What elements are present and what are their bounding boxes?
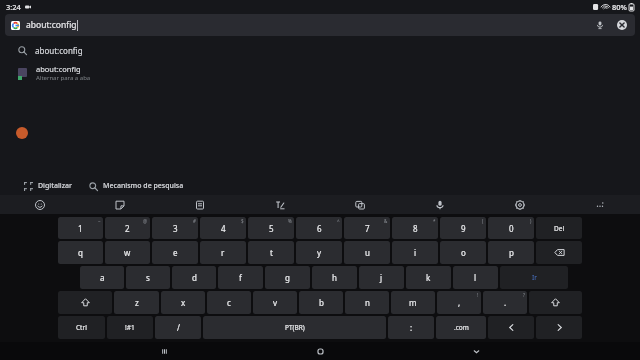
button[interactable]: More options: [560, 195, 640, 214]
button[interactable]: Translate: [320, 195, 400, 214]
staticText: f: [239, 272, 242, 283]
button[interactable]: :: [388, 316, 434, 339]
button[interactable]: j: [359, 266, 404, 289]
button[interactable]: f: [218, 266, 263, 289]
staticText: z: [135, 297, 139, 308]
button[interactable]: .com: [436, 316, 486, 339]
staticText: q: [78, 247, 83, 258]
button[interactable]: t: [248, 241, 294, 264]
button[interactable]: z: [114, 291, 159, 314]
button[interactable]: Voice input: [400, 195, 480, 214]
staticText: u: [365, 247, 370, 258]
button[interactable]: 4: [200, 217, 246, 239]
button[interactable]: Cursor left: [488, 316, 534, 339]
staticText: m: [409, 297, 417, 308]
button[interactable]: /: [155, 316, 201, 339]
button[interactable]: 1: [58, 217, 103, 239]
staticText: ,: [458, 297, 461, 308]
staticText: 3:24: [6, 2, 21, 12]
button[interactable]: Clipboard: [160, 195, 240, 214]
button[interactable]: w: [105, 241, 150, 264]
button[interactable]: 9: [440, 217, 486, 239]
button[interactable]: !#1: [107, 316, 153, 339]
button[interactable]: q: [58, 241, 103, 264]
button[interactable]: b: [299, 291, 343, 314]
button[interactable]: r: [200, 241, 246, 264]
staticText: t: [270, 247, 273, 258]
button[interactable]: 0: [488, 217, 534, 239]
staticText: 6: [317, 223, 322, 234]
button[interactable]: 2: [105, 217, 150, 239]
button[interactable]: a: [80, 266, 124, 289]
button[interactable]: 7: [344, 217, 390, 239]
button[interactable]: Settings: [480, 195, 560, 214]
button[interactable]: Recent apps: [125, 342, 203, 360]
button[interactable]: Digitalizar: [22, 179, 75, 193]
button[interactable]: g: [265, 266, 310, 289]
button[interactable]: p: [488, 241, 534, 264]
button[interactable]: m: [391, 291, 435, 314]
staticText: 8: [413, 223, 418, 234]
button[interactable]: y: [296, 241, 342, 264]
staticText: d: [192, 272, 197, 283]
button[interactable]: Emoji: [0, 195, 80, 214]
staticText: e: [173, 247, 178, 258]
staticText: @: [143, 218, 148, 224]
button[interactable]: o: [440, 241, 486, 264]
button[interactable]: Shift: [58, 291, 112, 314]
button[interactable]: .: [483, 291, 527, 314]
staticText: /: [177, 322, 180, 333]
button[interactable]: i: [392, 241, 438, 264]
staticText: x: [181, 297, 186, 308]
staticText: #: [193, 218, 196, 224]
button[interactable]: 5: [248, 217, 294, 239]
staticText: g: [285, 272, 290, 283]
button[interactable]: s: [126, 266, 170, 289]
staticText: $: [241, 218, 244, 224]
button[interactable]: 8: [392, 217, 438, 239]
button[interactable]: l: [453, 266, 498, 289]
staticText: p: [509, 247, 514, 258]
button[interactable]: v: [253, 291, 297, 314]
button[interactable]: about:config: [0, 61, 640, 85]
button[interactable]: Handwriting: [240, 195, 320, 214]
button[interactable]: h: [312, 266, 357, 289]
staticText: (: [482, 218, 484, 224]
button[interactable]: e: [152, 241, 198, 264]
button[interactable]: Clear: [615, 18, 629, 32]
button[interactable]: Ctrl: [58, 316, 105, 339]
button[interactable]: PT(BR): [203, 316, 386, 339]
button[interactable]: Voice search: [593, 18, 607, 32]
staticText: 4: [221, 223, 226, 234]
staticText: .: [504, 297, 507, 308]
staticText: 1: [78, 223, 83, 234]
staticText: .com: [454, 323, 469, 332]
staticText: 80%: [612, 2, 627, 12]
button[interactable]: ,: [437, 291, 481, 314]
button[interactable]: Shift: [529, 291, 582, 314]
button[interactable]: Del: [536, 217, 582, 239]
staticText: Digitalizar: [38, 181, 73, 191]
button[interactable]: Cursor right: [536, 316, 582, 339]
button[interactable]: c: [207, 291, 251, 314]
button[interactable]: d: [172, 266, 216, 289]
button[interactable]: Home: [281, 342, 359, 360]
button[interactable]: 6: [296, 217, 342, 239]
button[interactable]: about:config: [0, 39, 640, 61]
button[interactable]: Ir: [500, 266, 568, 289]
staticText: a: [100, 272, 105, 283]
button[interactable]: x: [161, 291, 205, 314]
button[interactable]: Stickers: [80, 195, 160, 214]
staticText: o: [461, 247, 466, 258]
button[interactable]: Hide keyboard: [437, 342, 515, 360]
button[interactable]: about:config: [5, 14, 635, 36]
button[interactable]: 3: [152, 217, 198, 239]
staticText: &: [384, 218, 388, 224]
button[interactable]: u: [344, 241, 390, 264]
staticText: about:config: [26, 19, 77, 31]
button[interactable]: k: [406, 266, 451, 289]
button[interactable]: Backspace: [536, 241, 582, 264]
staticText: Ir: [532, 273, 537, 282]
button[interactable]: Mecanismo de pesquisa: [87, 179, 186, 193]
button[interactable]: n: [345, 291, 389, 314]
